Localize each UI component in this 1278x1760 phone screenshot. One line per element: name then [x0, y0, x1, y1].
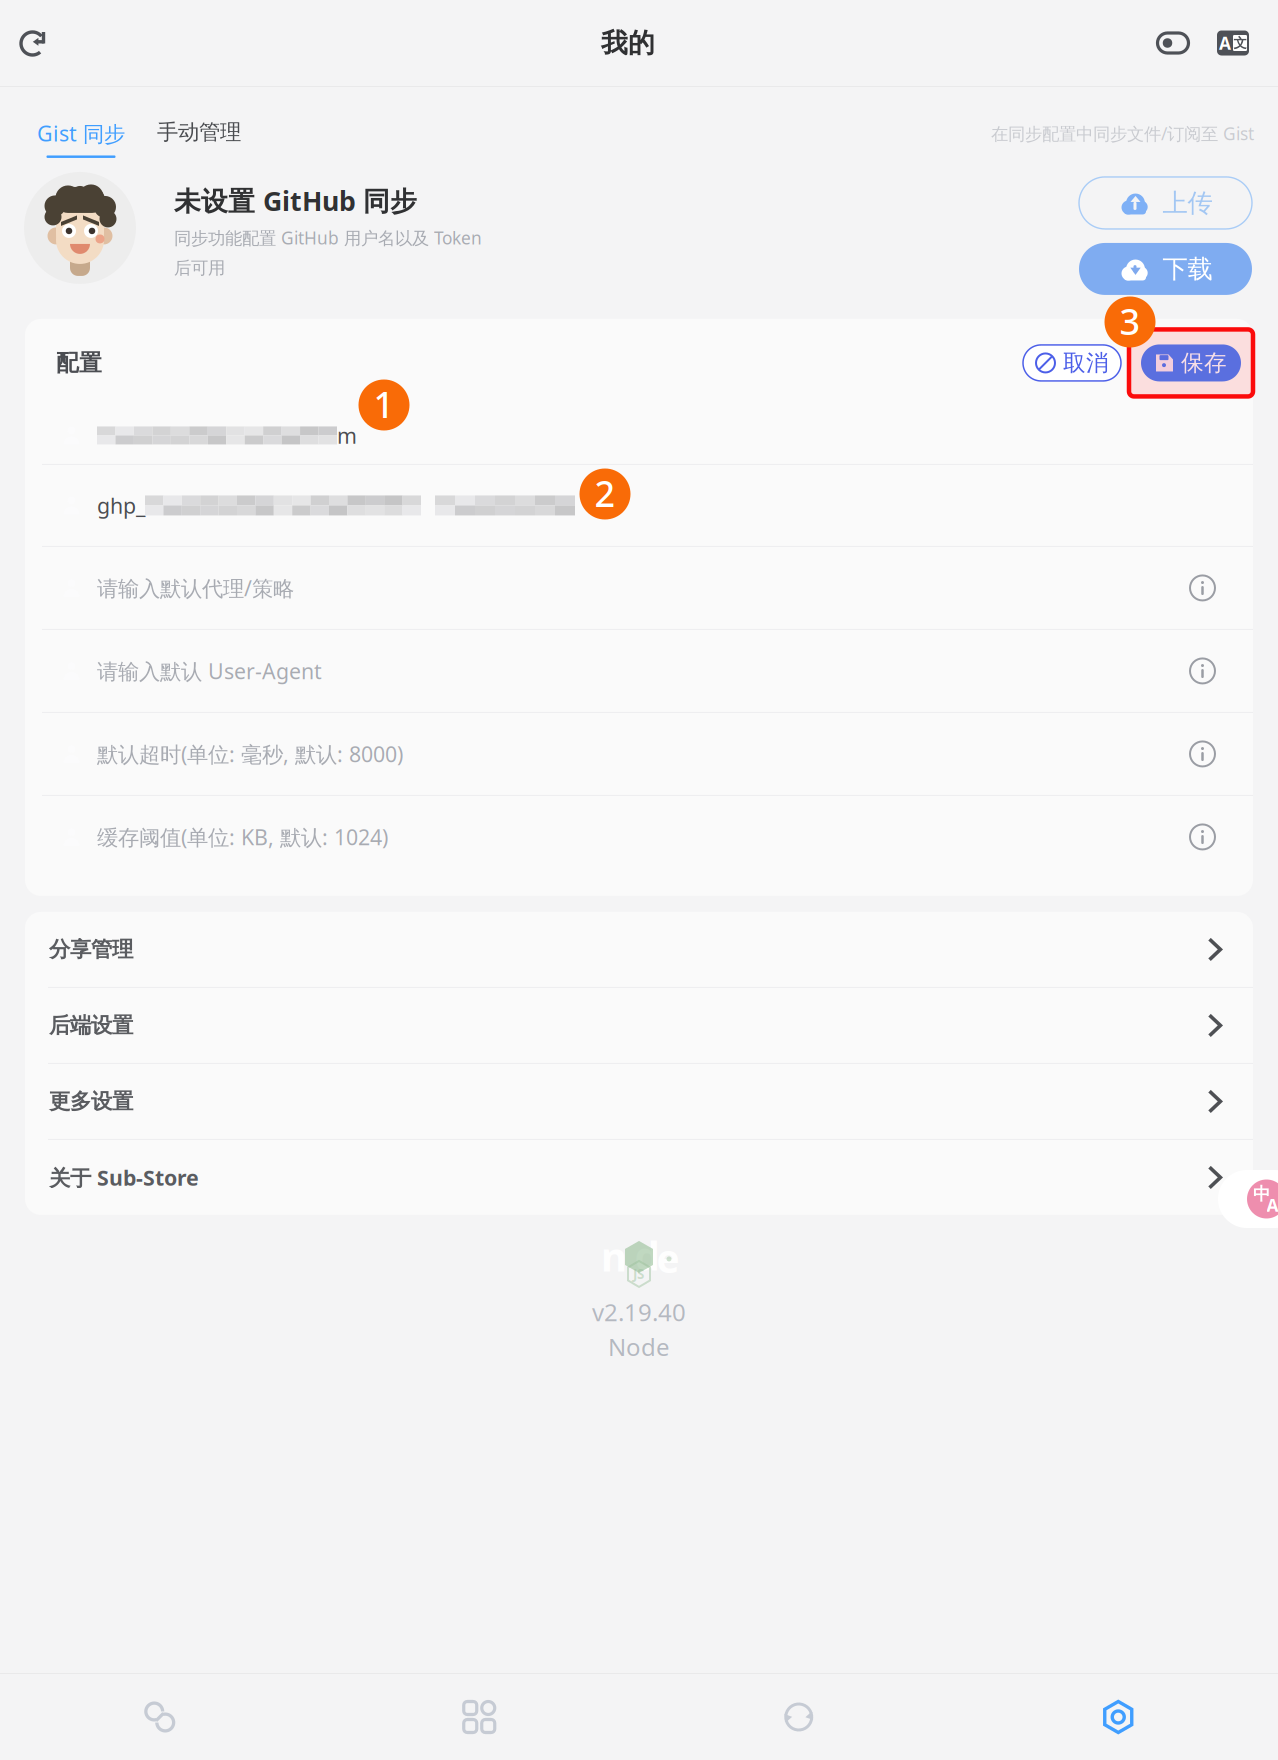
staticText: 文 — [1233, 35, 1246, 51]
staticText: 更多设置 — [49, 1088, 133, 1114]
button[interactable]: Refresh — [0, 0, 68, 86]
staticText: 下载 — [1162, 253, 1212, 284]
staticText: 默认超时(单位: 毫秒, 默认: 8000) — [97, 740, 403, 768]
staticText: A — [1266, 1193, 1278, 1216]
staticText: 2 — [594, 469, 615, 517]
staticText: d — [634, 1228, 659, 1281]
staticText: n — [601, 1229, 627, 1282]
staticText: 在同步配置中同步文件/订阅至 Gist — [991, 122, 1254, 145]
staticText: 我的 — [601, 27, 655, 59]
staticText: 1 — [373, 380, 394, 428]
staticText: 后端设置 — [49, 1012, 133, 1038]
staticText: Node — [608, 1331, 670, 1363]
staticText: A — [1219, 31, 1231, 54]
staticText: 手动管理 — [157, 119, 241, 145]
button[interactable]: 上传 — [1079, 177, 1252, 229]
button[interactable]: 更多设置 — [25, 1064, 1253, 1139]
staticText: m — [337, 421, 357, 450]
button[interactable]: 取消 — [1023, 345, 1121, 381]
staticText: 请输入默认 User-Agent — [97, 657, 322, 685]
button[interactable]: Sync — [639, 1674, 958, 1760]
staticText: Gist 同步 — [37, 119, 125, 147]
staticText: 分享管理 — [49, 936, 133, 962]
button[interactable]: 后端设置 — [25, 988, 1253, 1063]
button[interactable]: 关于 Sub-Store — [25, 1140, 1253, 1215]
staticText: 中 — [1253, 1183, 1270, 1205]
staticText: 关于 Sub-Store — [49, 1163, 199, 1192]
button[interactable]: Settings — [958, 1674, 1278, 1760]
staticText: 缓存阈值(单位: KB, 默认: 1024) — [97, 823, 388, 851]
button[interactable]: Change language — [1213, 16, 1253, 70]
button[interactable]: Subscriptions — [0, 1674, 319, 1760]
button[interactable]: 手动管理 — [157, 119, 241, 156]
staticText: 未设置 GitHub 同步 — [174, 183, 417, 218]
button[interactable]: Collections — [319, 1674, 639, 1760]
button[interactable]: 分享管理 — [25, 912, 1253, 987]
staticText: 取消 — [1063, 349, 1109, 377]
staticText: 请输入默认代理/策略 — [97, 574, 294, 602]
button[interactable]: Gist 同步 — [37, 119, 125, 158]
staticText: JS — [633, 1265, 644, 1283]
staticText: ghp_ — [97, 491, 145, 520]
staticText: v2.19.40 — [592, 1296, 686, 1328]
button[interactable]: 保存 — [1129, 329, 1253, 396]
staticText: 上传 — [1162, 187, 1212, 218]
staticText: 后可用 — [174, 257, 225, 279]
staticText: 同步功能配置 GitHub 用户名以及 Token — [174, 226, 482, 249]
button[interactable]: Toggle dark mode — [1153, 16, 1193, 70]
staticText: 3 — [1119, 297, 1140, 345]
staticText: e — [656, 1232, 679, 1284]
staticText: 保存 — [1181, 349, 1227, 377]
button[interactable]: 下载 — [1079, 243, 1252, 295]
staticText: 配置 — [56, 349, 102, 377]
